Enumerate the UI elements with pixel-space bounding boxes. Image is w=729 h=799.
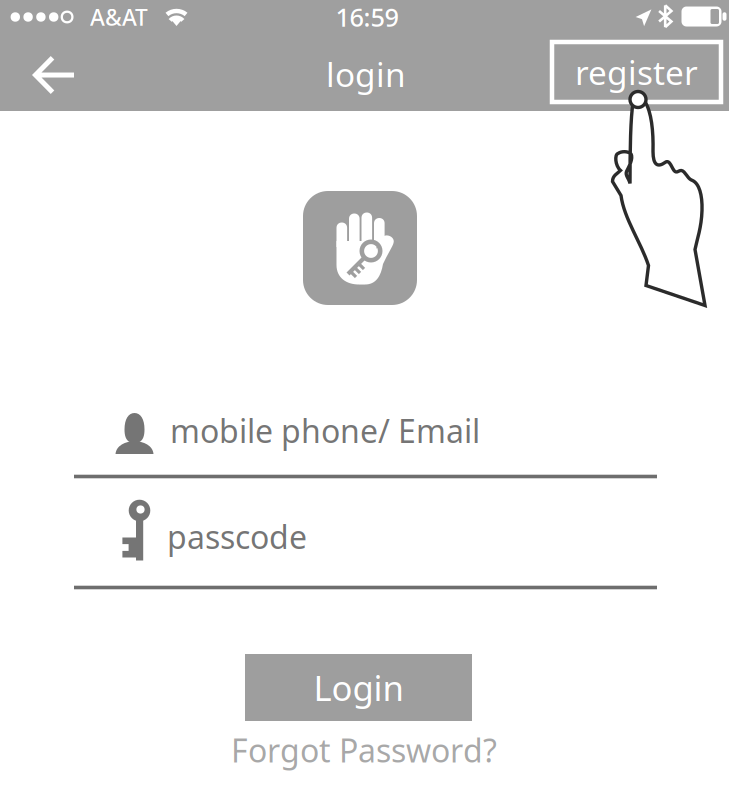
button[interactable]: Back <box>8 39 100 110</box>
button[interactable]: Forgot Password? <box>231 729 497 771</box>
button[interactable]: passcode <box>74 511 657 589</box>
button[interactable]: Login <box>245 654 472 721</box>
staticText: 16:59 <box>335 0 398 34</box>
staticText: passcode <box>167 515 307 558</box>
staticText: register <box>575 50 698 94</box>
staticText: mobile phone/ Email <box>170 409 480 452</box>
staticText: login <box>326 52 406 96</box>
staticText: Login <box>313 664 403 710</box>
button[interactable]: mobile phone/ Email <box>74 400 657 478</box>
staticText: A&AT <box>90 2 148 32</box>
button[interactable]: register <box>552 42 721 102</box>
staticText: Forgot Password? <box>231 729 497 771</box>
